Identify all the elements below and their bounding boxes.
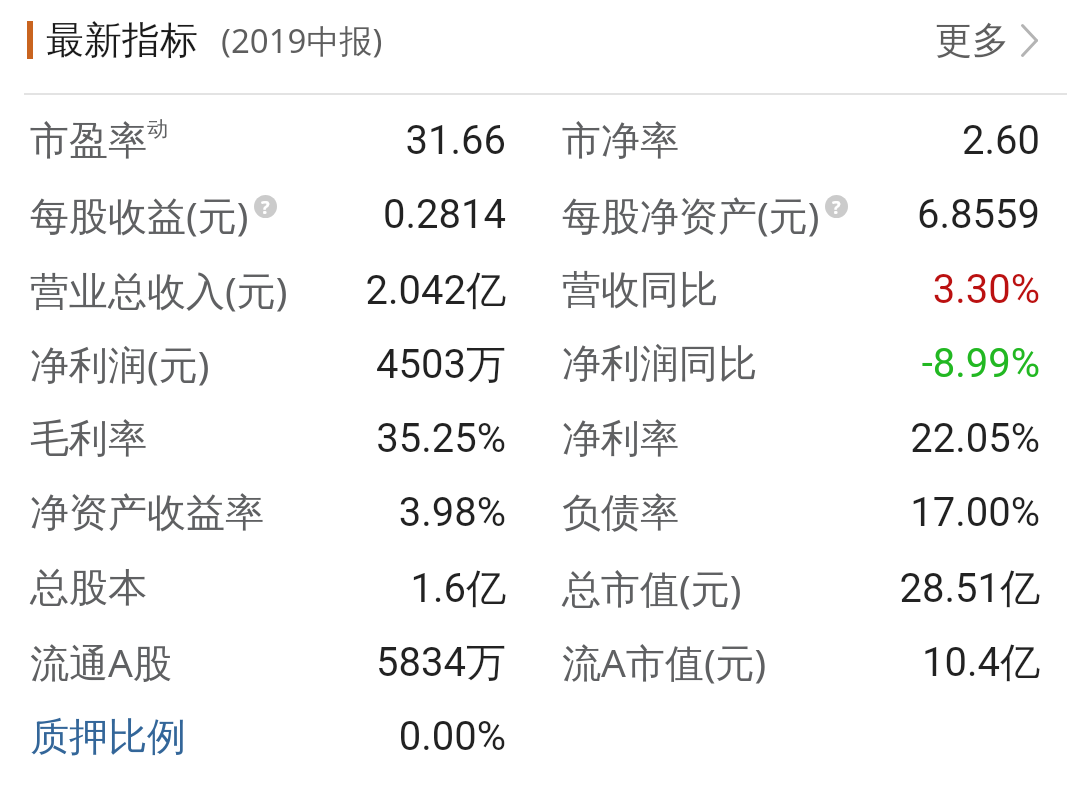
- staticText: 0.00%: [398, 713, 506, 760]
- button[interactable]: 营收同比: [562, 252, 1040, 327]
- staticText: 最新指标: [46, 16, 198, 64]
- button[interactable]: 市净率: [562, 103, 1040, 178]
- staticText: -8.99%: [921, 340, 1040, 387]
- button[interactable]: 质押比例: [30, 699, 506, 774]
- staticText: 净利润(元): [30, 337, 210, 390]
- button[interactable]: 每股净资产(元): [562, 177, 1040, 252]
- button[interactable]: 净利润(元): [30, 326, 506, 401]
- staticText: 更多: [935, 17, 1009, 64]
- button[interactable]: 营业总收入(元): [30, 252, 506, 327]
- staticText: 1.6亿: [410, 563, 506, 613]
- staticText: 3.98%: [398, 489, 506, 536]
- button[interactable]: 总市值(元): [562, 550, 1040, 625]
- staticText: (2019中报): [221, 18, 383, 63]
- staticText: ?: [261, 195, 270, 218]
- staticText: 6.8559: [917, 191, 1040, 238]
- button[interactable]: 净利润同比: [562, 326, 1040, 401]
- staticText: 净资产收益率: [30, 488, 264, 537]
- staticText: 毛利率: [30, 414, 147, 463]
- staticText: 28.51亿: [899, 563, 1040, 613]
- button[interactable]: 流A市值(元): [562, 624, 1040, 699]
- staticText: 流通A股: [30, 635, 172, 688]
- button[interactable]: 更多: [929, 0, 1044, 80]
- staticText: 17.00%: [910, 489, 1040, 536]
- staticText: 31.66: [405, 117, 506, 164]
- staticText: 市盈率动: [30, 116, 168, 166]
- staticText: 每股收益(元): [30, 188, 249, 241]
- staticText: 负债率: [562, 488, 679, 537]
- staticText: 22.05%: [910, 415, 1040, 462]
- staticText: 营业总收入(元): [30, 263, 288, 316]
- staticText: 2.60: [962, 117, 1040, 164]
- staticText: 0.2814: [383, 191, 506, 238]
- staticText: 市净率: [562, 116, 679, 165]
- button[interactable]: 流通A股: [30, 624, 506, 699]
- button[interactable]: 净利率: [562, 401, 1040, 476]
- button[interactable]: 毛利率: [30, 401, 506, 476]
- button[interactable]: 每股收益(元): [30, 177, 506, 252]
- staticText: 总股本: [30, 563, 147, 612]
- other: More: [1021, 24, 1038, 57]
- staticText: 营收同比: [562, 265, 718, 314]
- staticText: 35.25%: [376, 415, 506, 462]
- staticText: 质押比例: [30, 712, 186, 761]
- button[interactable]: 市盈率动: [30, 103, 506, 178]
- staticText: 净利润同比: [562, 339, 757, 388]
- staticText: 总市值(元): [562, 561, 742, 614]
- staticText: 净利率: [562, 414, 679, 463]
- staticText: 每股净资产(元): [562, 188, 820, 241]
- button[interactable]: 总股本: [30, 550, 506, 625]
- staticText: 2.042亿: [365, 265, 506, 315]
- button[interactable]: 负债率: [562, 475, 1040, 550]
- staticText: ?: [832, 195, 841, 218]
- staticText: 5834万: [376, 637, 506, 687]
- staticText: 10.4亿: [922, 637, 1040, 687]
- button[interactable]: 净资产收益率: [30, 475, 506, 550]
- staticText: 流A市值(元): [562, 635, 767, 688]
- staticText: 3.30%: [932, 266, 1040, 313]
- staticText: 4503万: [376, 339, 506, 389]
